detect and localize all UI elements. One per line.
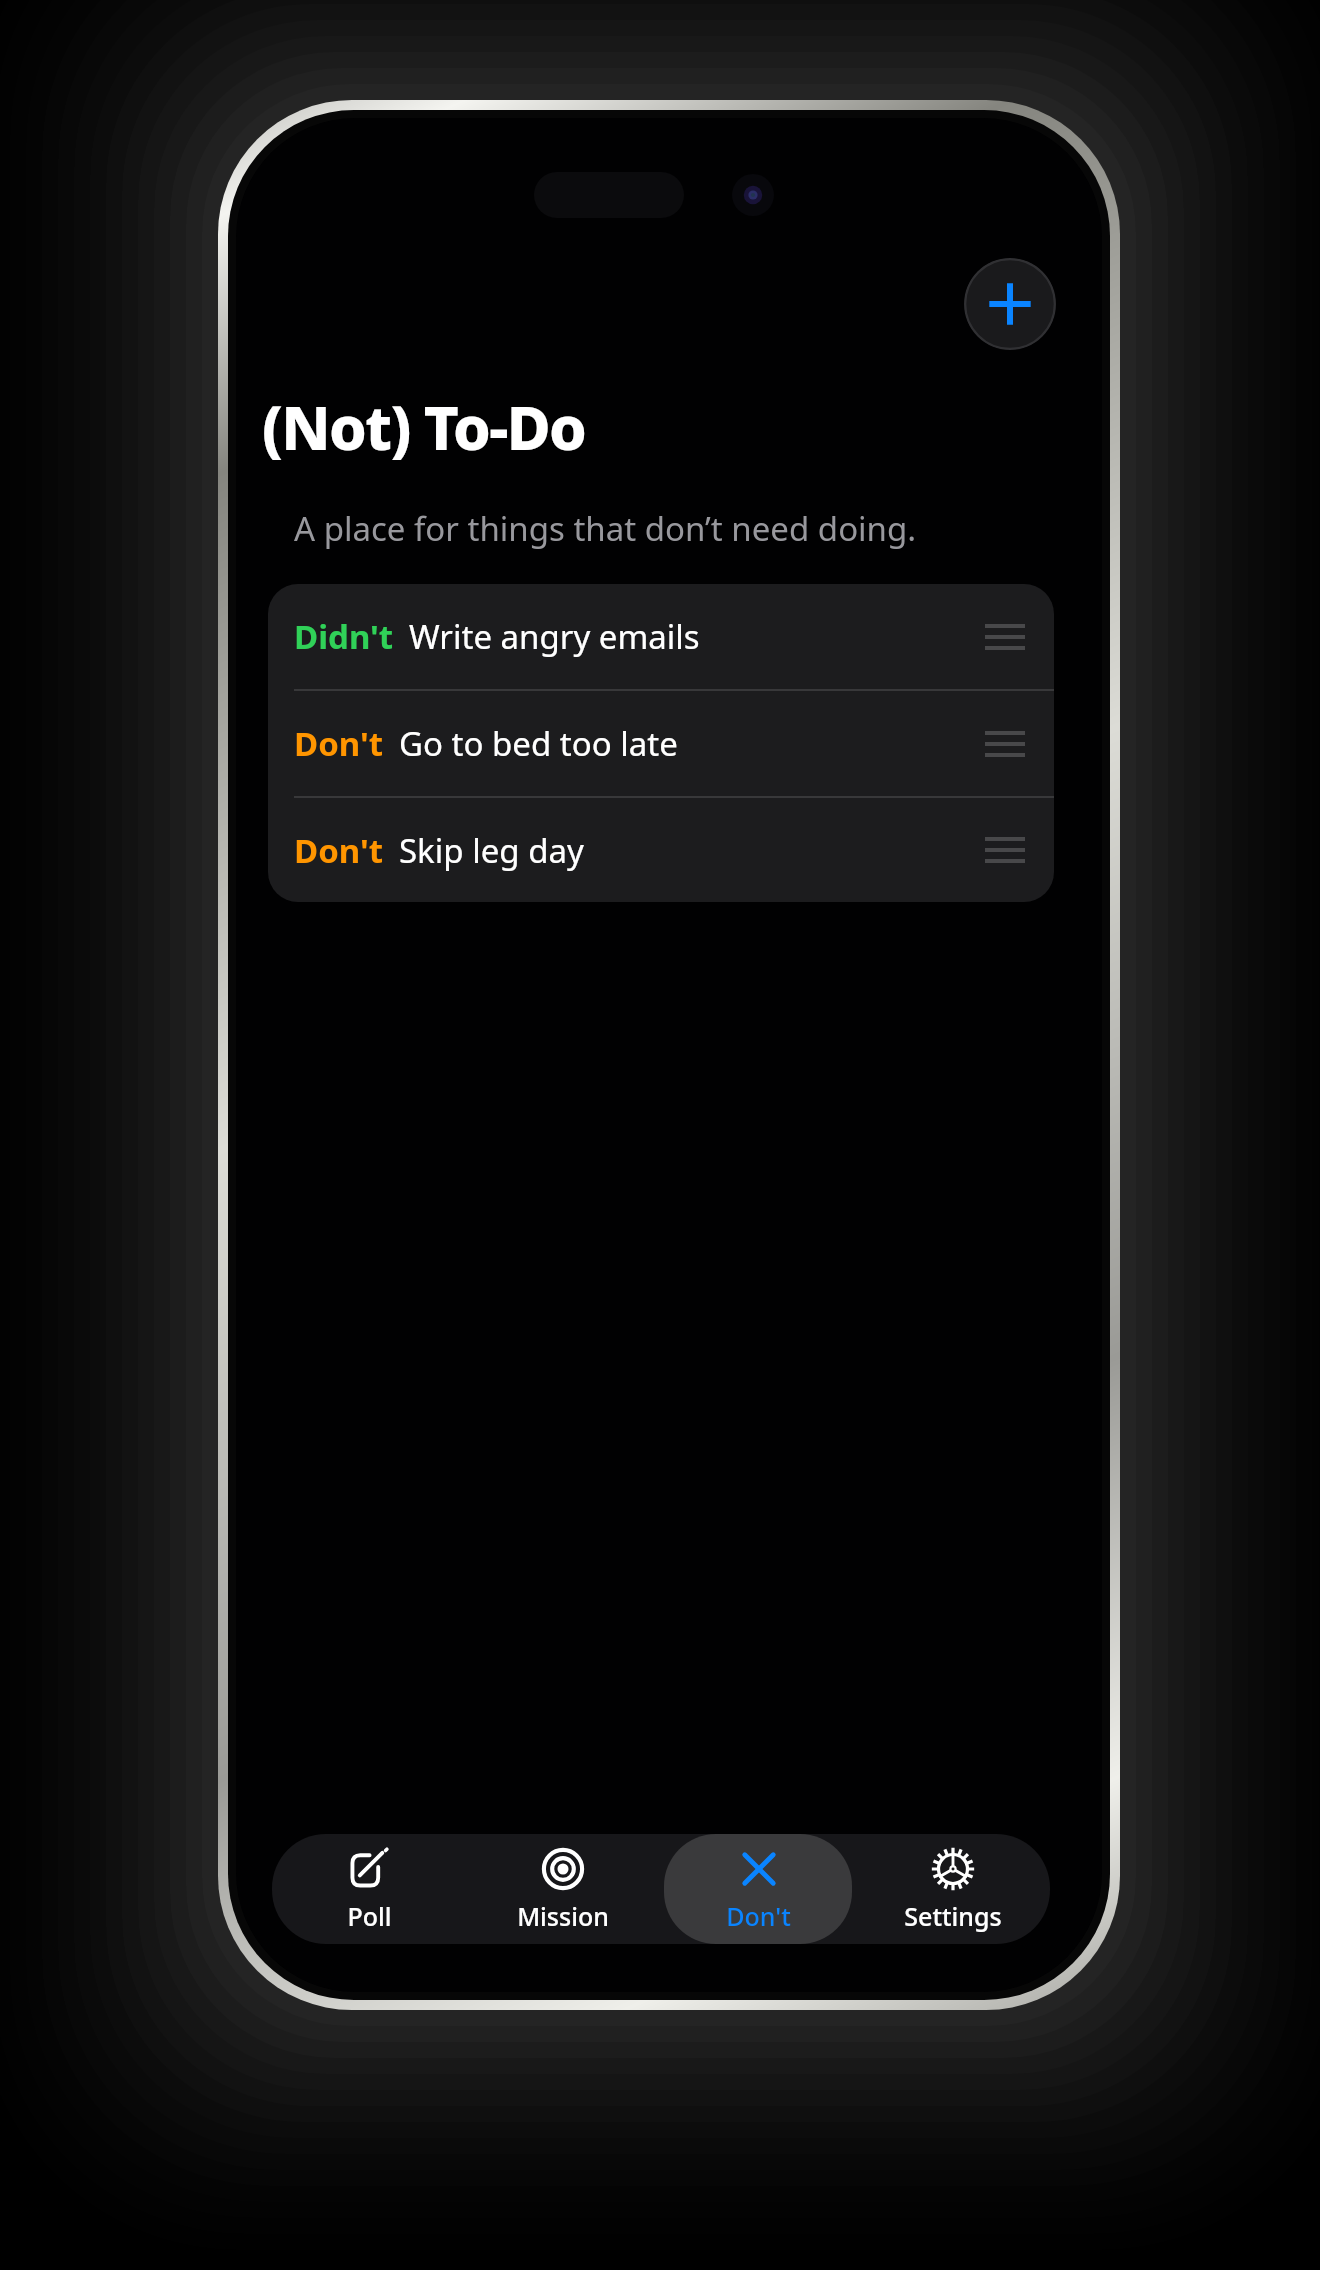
staticText: Mission: [517, 1899, 609, 1933]
staticText: Skip leg day: [399, 828, 584, 873]
other: Reorder Go to bed too late: [980, 719, 1030, 769]
staticText: (Not) To-Do: [262, 386, 586, 468]
button[interactable]: Mission: [469, 1834, 657, 1944]
button[interactable]: Settings: [859, 1834, 1047, 1944]
staticText: Poll: [347, 1899, 392, 1933]
button[interactable]: Add item: [964, 258, 1056, 350]
staticText: Don't: [294, 721, 384, 766]
staticText: Didn't: [294, 614, 394, 659]
other: Reorder Write angry emails: [980, 612, 1030, 662]
staticText: Write angry emails: [409, 614, 700, 659]
button[interactable]: Don't: [268, 798, 1054, 902]
staticText: Don't: [294, 828, 384, 873]
button[interactable]: Poll: [275, 1834, 463, 1944]
staticText: Settings: [904, 1899, 1002, 1933]
button[interactable]: Didn't: [268, 584, 1054, 689]
staticText: Don't: [726, 1899, 791, 1933]
button[interactable]: Don't: [664, 1834, 852, 1944]
button[interactable]: Don't: [268, 691, 1054, 796]
staticText: A place for things that don’t need doing…: [294, 506, 917, 551]
other: Reorder Skip leg day: [980, 825, 1030, 875]
staticText: Go to bed too late: [399, 721, 678, 766]
